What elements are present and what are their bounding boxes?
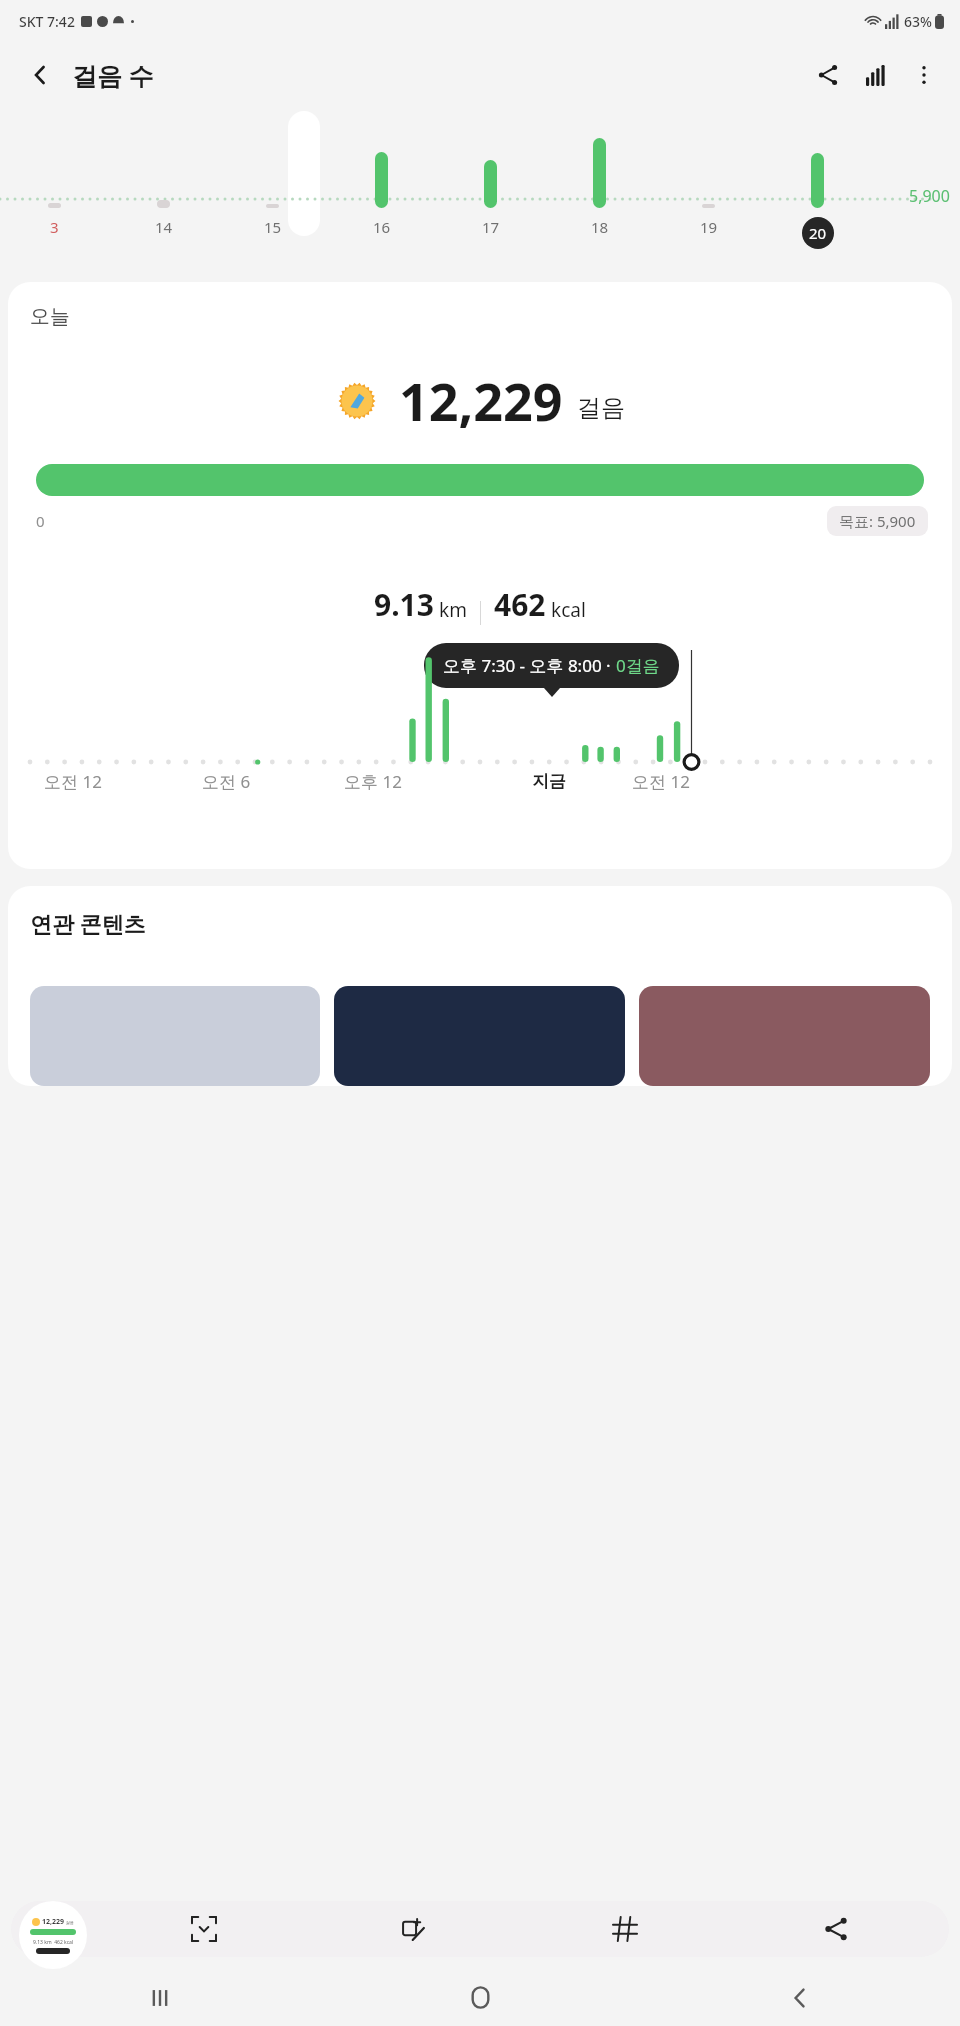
button[interactable]: Share — [730, 1901, 941, 1957]
button[interactable]: 20 — [802, 217, 834, 249]
staticText: 목표: 5,900 — [839, 511, 916, 531]
staticText: 19 — [700, 217, 718, 237]
staticText: 9.13 km 462 kcal — [33, 1939, 74, 1946]
button[interactable]: More options — [900, 51, 948, 99]
button[interactable]: Preview — [19, 1901, 87, 1969]
staticText: 18 — [591, 217, 609, 237]
staticText: 연관 콘텐츠 — [30, 908, 146, 938]
staticText: 462 — [494, 584, 546, 625]
button[interactable]: Tags — [519, 1901, 730, 1957]
staticText: 오전 6 — [202, 770, 251, 793]
staticText: 63% — [904, 12, 932, 31]
button[interactable]: Share — [804, 51, 852, 99]
staticText: 오후 12 — [344, 770, 402, 793]
staticText: 걸음 — [66, 1920, 74, 1925]
staticText: 0걸음 — [616, 654, 660, 677]
staticText: 0 — [36, 511, 45, 531]
staticText: 지금 — [532, 771, 566, 792]
button[interactable]: Focus — [99, 1901, 309, 1957]
staticText: 12,229 — [399, 365, 563, 436]
staticText: 걸음 — [577, 393, 625, 423]
staticText: 걸음 수 — [72, 58, 154, 92]
staticText: 5,900 — [909, 185, 950, 207]
staticText: 20 — [809, 223, 827, 243]
staticText: 9.13 — [374, 584, 434, 625]
staticText: 오전 12 — [632, 770, 690, 793]
button[interactable]: Back — [640, 1969, 960, 2026]
staticText: kcal — [551, 597, 586, 623]
button[interactable]: Edit — [309, 1901, 519, 1957]
staticText: 오전 12 — [44, 770, 102, 793]
staticText: SKT 7:42 — [19, 12, 75, 31]
staticText: 3 — [50, 217, 59, 237]
staticText: 15 — [264, 217, 282, 237]
staticText: 16 — [373, 217, 391, 237]
staticText: 12,229 — [42, 1917, 65, 1927]
staticText: 14 — [155, 217, 173, 237]
staticText: 오늘 — [30, 304, 70, 329]
button[interactable]: Recents — [0, 1969, 320, 2026]
staticText: 17 — [482, 217, 500, 237]
staticText: 오후 7:30 - 오후 8:00 · — [443, 654, 616, 677]
button[interactable]: Chart — [852, 51, 900, 99]
staticText: km — [439, 597, 467, 623]
button[interactable]: Home — [320, 1969, 640, 2026]
button[interactable]: Back — [18, 53, 62, 97]
